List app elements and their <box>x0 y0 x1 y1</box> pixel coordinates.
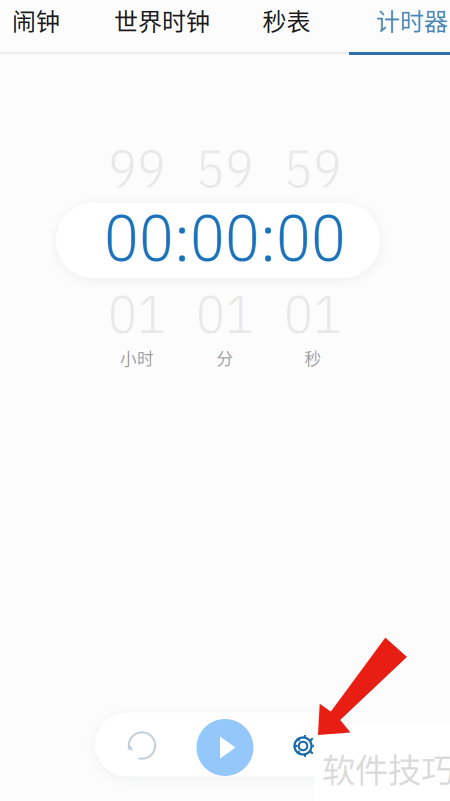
staticText: 小时 <box>120 346 154 370</box>
staticText: 59 <box>284 133 342 202</box>
button[interactable]: 计时器 <box>362 0 450 46</box>
staticText: 01 <box>196 278 254 348</box>
staticText: 00:00:00 <box>104 195 346 278</box>
button[interactable]: 闹钟 <box>0 0 78 46</box>
staticText: 闹钟 <box>12 3 60 37</box>
button[interactable]: Start <box>187 715 263 779</box>
button[interactable]: Reset <box>104 713 180 777</box>
staticText: 01 <box>108 278 166 348</box>
button[interactable]: 秒表 <box>244 0 328 46</box>
staticText: 软件技巧 <box>322 744 450 792</box>
staticText: 秒 <box>304 346 321 370</box>
staticText: 分 <box>216 346 233 370</box>
button[interactable]: Settings <box>267 714 343 778</box>
staticText: 计时器 <box>376 3 448 37</box>
staticText: 59 <box>196 133 254 202</box>
button[interactable]: 世界时钟 <box>100 0 224 46</box>
staticText: 99 <box>108 133 166 202</box>
staticText: 秒表 <box>262 3 310 37</box>
staticText: 世界时钟 <box>114 3 210 37</box>
staticText: 01 <box>284 278 342 348</box>
